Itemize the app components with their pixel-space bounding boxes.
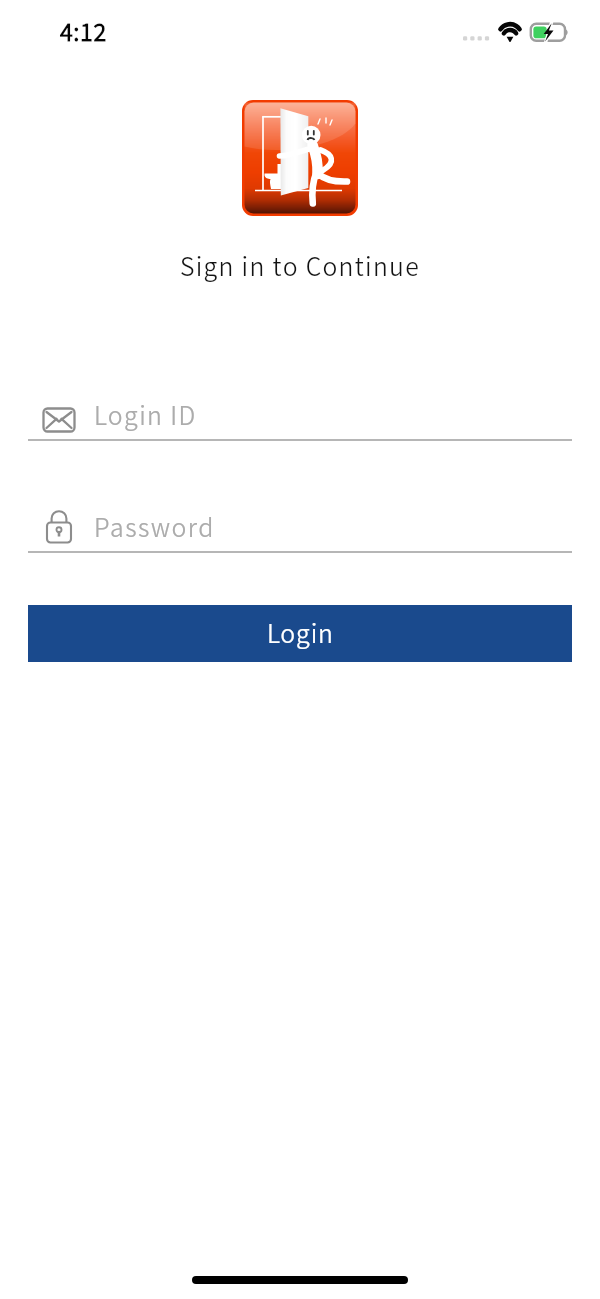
staticText: Login ID	[94, 399, 197, 439]
other: Password	[40, 513, 78, 551]
staticText: 4:12	[60, 17, 107, 55]
staticText: Login	[267, 617, 334, 657]
button[interactable]: Login ID	[28, 394, 572, 442]
button[interactable]: Login	[28, 605, 572, 662]
other: Login ID	[40, 401, 78, 439]
staticText: Password	[94, 511, 215, 551]
staticText: Sign in to Continue	[180, 250, 420, 290]
button[interactable]: Password	[28, 506, 572, 554]
